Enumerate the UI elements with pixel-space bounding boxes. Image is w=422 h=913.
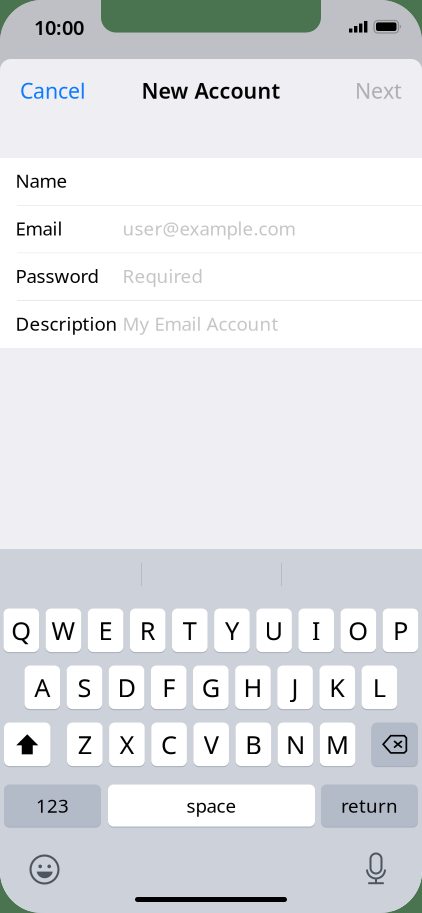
button[interactable]: E	[88, 608, 123, 653]
staticText: return	[341, 793, 398, 818]
staticText: W	[51, 613, 75, 647]
button[interactable]: space	[108, 784, 315, 827]
staticText: S	[77, 670, 91, 704]
button[interactable]: Email	[0, 206, 422, 253]
staticText: Y	[225, 613, 239, 647]
button[interactable]: O	[340, 608, 376, 653]
button[interactable]: R	[130, 608, 165, 653]
staticText: C	[161, 727, 177, 761]
staticText: New Account	[141, 76, 280, 105]
button[interactable]: B	[235, 722, 271, 767]
staticText: O	[348, 613, 368, 647]
staticText: G	[202, 670, 220, 704]
staticText: T	[183, 613, 197, 647]
staticText: K	[329, 670, 345, 704]
button[interactable]: G	[193, 665, 229, 710]
button[interactable]: S	[67, 665, 102, 710]
button[interactable]: Dictation	[356, 843, 396, 895]
staticText: R	[140, 613, 156, 647]
button[interactable]: W	[46, 608, 81, 653]
staticText: A	[34, 670, 50, 704]
button[interactable]: Password	[0, 253, 422, 300]
staticText: Required	[122, 263, 202, 288]
button[interactable]: F	[151, 665, 186, 710]
button[interactable]: H	[235, 665, 271, 710]
staticText: M	[326, 727, 349, 761]
staticText: user@example.com	[122, 216, 295, 241]
staticText: B	[245, 727, 261, 761]
button[interactable]: T	[172, 608, 208, 653]
button[interactable]: Z	[67, 722, 103, 767]
button[interactable]: Y	[214, 608, 250, 653]
staticText: Q	[11, 613, 31, 647]
staticText: V	[204, 727, 219, 761]
staticText: E	[99, 613, 113, 647]
staticText: Name	[15, 168, 67, 193]
staticText: Email	[15, 216, 62, 241]
staticText: space	[186, 793, 236, 818]
staticText: L	[373, 670, 386, 704]
staticText: U	[265, 613, 284, 647]
button[interactable]: Description	[0, 301, 422, 348]
staticText: My Email Account	[122, 311, 278, 336]
button[interactable]: V	[193, 722, 229, 767]
staticText: Password	[15, 263, 98, 288]
staticText: 10:00	[34, 14, 84, 41]
staticText: P	[393, 613, 408, 647]
staticText: D	[118, 670, 136, 704]
staticText: F	[162, 670, 175, 704]
button[interactable]: Cancel	[0, 62, 102, 119]
button[interactable]: L	[361, 665, 397, 710]
staticText: Cancel	[20, 76, 86, 105]
button[interactable]: K	[319, 665, 355, 710]
button[interactable]: N	[278, 722, 313, 767]
staticText: J	[292, 670, 299, 704]
button[interactable]: X	[109, 722, 145, 767]
button[interactable]: Name	[0, 158, 422, 205]
button[interactable]: D	[109, 665, 144, 710]
button[interactable]: M	[320, 722, 355, 767]
staticText: I	[312, 613, 321, 647]
staticText: Next	[355, 76, 402, 105]
button[interactable]: U	[256, 608, 292, 653]
staticText: Description	[15, 311, 117, 336]
button[interactable]: I	[298, 608, 334, 653]
button[interactable]: 123	[4, 784, 101, 827]
button[interactable]: Shift	[4, 722, 50, 767]
button[interactable]: Delete	[371, 722, 418, 767]
staticText: N	[286, 727, 305, 761]
staticText: X	[119, 727, 134, 761]
button[interactable]: Next	[339, 62, 422, 119]
staticText: 123	[36, 793, 69, 818]
button[interactable]: P	[383, 608, 418, 653]
button[interactable]: return	[321, 784, 418, 827]
button[interactable]: A	[24, 665, 60, 710]
button[interactable]: J	[277, 665, 313, 710]
staticText: Z	[78, 727, 92, 761]
button[interactable]: Q	[3, 608, 39, 653]
button[interactable]: C	[151, 722, 187, 767]
staticText: H	[243, 670, 262, 704]
button[interactable]: Emoji	[20, 845, 69, 894]
